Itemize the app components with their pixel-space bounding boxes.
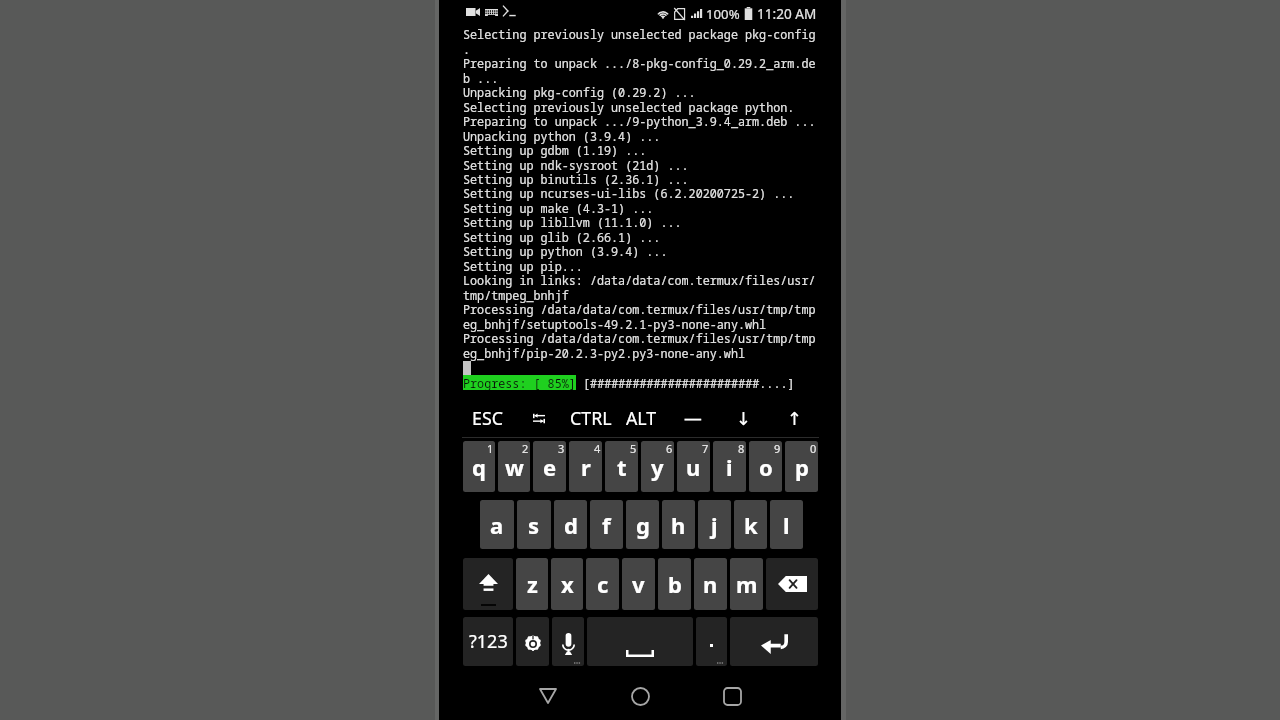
staticText: f	[602, 510, 611, 540]
button[interactable]: m	[730, 558, 763, 610]
button[interactable]: r	[569, 441, 602, 492]
button[interactable]: c	[586, 558, 619, 610]
staticText: ↓	[736, 408, 751, 429]
button[interactable]: b	[658, 558, 691, 610]
staticText: Setting up pip...	[463, 258, 583, 274]
button[interactable]: Settings	[516, 617, 549, 666]
staticText: 11:20 AM	[757, 4, 817, 23]
staticText: 9	[774, 441, 781, 456]
button[interactable]: k	[734, 500, 767, 549]
staticText: ?123	[469, 629, 508, 654]
staticText: 3	[558, 441, 565, 456]
staticText: Selecting previously unselected package …	[463, 26, 816, 42]
button[interactable]: w	[498, 441, 530, 492]
button[interactable]: ↓	[718, 403, 769, 433]
staticText: Setting up ndk-sysroot (21d) ...	[463, 157, 689, 173]
button[interactable]: g	[626, 500, 659, 549]
button[interactable]: Home	[614, 672, 666, 720]
staticText: Preparing to unpack .../8-pkg-config_0.2…	[463, 55, 816, 71]
staticText: 8	[738, 441, 745, 456]
staticText: tmp/tmpeg_bnhjf	[463, 287, 569, 303]
button[interactable]: Shift	[463, 558, 513, 610]
button[interactable]: h	[662, 500, 695, 549]
staticText: Looking in links: /data/data/com.termux/…	[463, 272, 816, 288]
button[interactable]: s	[517, 500, 551, 549]
staticText: Setting up glib (2.66.1) ...	[463, 229, 661, 245]
staticText: CTRL	[570, 406, 612, 430]
staticText: q	[472, 452, 486, 482]
staticText: eg_bnhjf/pip-20.2.3-py2.py3-none-any.whl	[463, 345, 745, 361]
staticText: Selecting previously unselected package …	[463, 99, 795, 115]
button[interactable]: x	[551, 558, 583, 610]
staticText: 2	[522, 441, 529, 456]
staticText: Unpacking pkg-config (0.29.2) ...	[463, 84, 696, 100]
staticText: Setting up libllvm (11.1.0) ...	[463, 214, 682, 230]
staticText: Processing /data/data/com.termux/files/u…	[463, 301, 816, 317]
staticText: j	[711, 510, 718, 540]
staticText: eg_bnhjf/setuptools-49.2.1-py3-none-any.…	[463, 316, 767, 332]
button[interactable]: CTRL	[565, 403, 616, 433]
button[interactable]: q	[463, 441, 495, 492]
button[interactable]: ↑	[769, 403, 820, 433]
staticText: b ...	[463, 70, 499, 86]
staticText: Preparing to unpack .../9-python_3.9.4_a…	[463, 113, 816, 129]
button[interactable]: Tab	[513, 403, 565, 433]
staticText: 1	[487, 441, 494, 456]
staticText: Processing /data/data/com.termux/files/u…	[463, 330, 816, 346]
button[interactable]: ESC	[461, 403, 513, 433]
staticText: Setting up ncurses-ui-libs (6.2.20200725…	[463, 185, 795, 201]
staticText: w	[505, 452, 524, 482]
staticText: m	[736, 569, 758, 599]
staticText: a	[490, 510, 504, 540]
staticText: x	[561, 569, 574, 599]
staticText: 7	[702, 441, 709, 456]
button[interactable]: y	[641, 441, 674, 492]
button[interactable]: Symbols	[463, 617, 513, 666]
button[interactable]: d	[554, 500, 587, 549]
staticText: ESC	[472, 406, 503, 430]
button[interactable]: n	[694, 558, 727, 610]
button[interactable]: v	[622, 558, 655, 610]
button[interactable]: a	[480, 500, 514, 549]
staticText: 0	[810, 441, 817, 456]
button[interactable]: Period	[696, 617, 727, 666]
staticText: 4	[594, 441, 601, 456]
staticText: h	[671, 510, 686, 540]
staticText: v	[632, 569, 645, 599]
staticText: l	[783, 510, 790, 540]
staticText: d	[564, 510, 578, 540]
staticText: Setting up gdbm (1.19) ...	[463, 142, 647, 158]
button[interactable]: z	[516, 558, 548, 610]
staticText: ↑	[787, 408, 802, 429]
staticText: s	[528, 510, 540, 540]
staticText: .	[463, 41, 471, 57]
staticText: 6	[666, 441, 673, 456]
staticText: Setting up binutils (2.36.1) ...	[463, 171, 689, 187]
button[interactable]: j	[698, 500, 731, 549]
staticText: e	[543, 452, 557, 482]
button[interactable]: t	[605, 441, 638, 492]
button[interactable]: Recents	[706, 672, 758, 720]
button[interactable]: o	[749, 441, 782, 492]
button[interactable]: —	[667, 403, 718, 433]
staticText: o	[759, 452, 773, 482]
staticText: i	[726, 452, 733, 482]
button[interactable]: Back	[522, 672, 574, 720]
button[interactable]: Voice input	[552, 617, 584, 666]
button[interactable]: l	[770, 500, 803, 549]
staticText: k	[744, 510, 758, 540]
button[interactable]: Space	[587, 617, 693, 666]
button[interactable]: i	[713, 441, 746, 492]
button[interactable]: ALT	[616, 403, 667, 433]
button[interactable]: p	[785, 441, 818, 492]
button[interactable]: f	[590, 500, 623, 549]
staticText: u	[686, 452, 701, 482]
button[interactable]: Backspace	[766, 558, 818, 610]
staticText: p	[795, 452, 809, 482]
staticText: g	[636, 510, 650, 540]
button[interactable]: u	[677, 441, 710, 492]
staticText: Setting up python (3.9.4) ...	[463, 243, 668, 259]
staticText: Progress: [ 85%]	[463, 375, 576, 390]
button[interactable]: e	[533, 441, 566, 492]
button[interactable]: Enter	[730, 617, 818, 666]
